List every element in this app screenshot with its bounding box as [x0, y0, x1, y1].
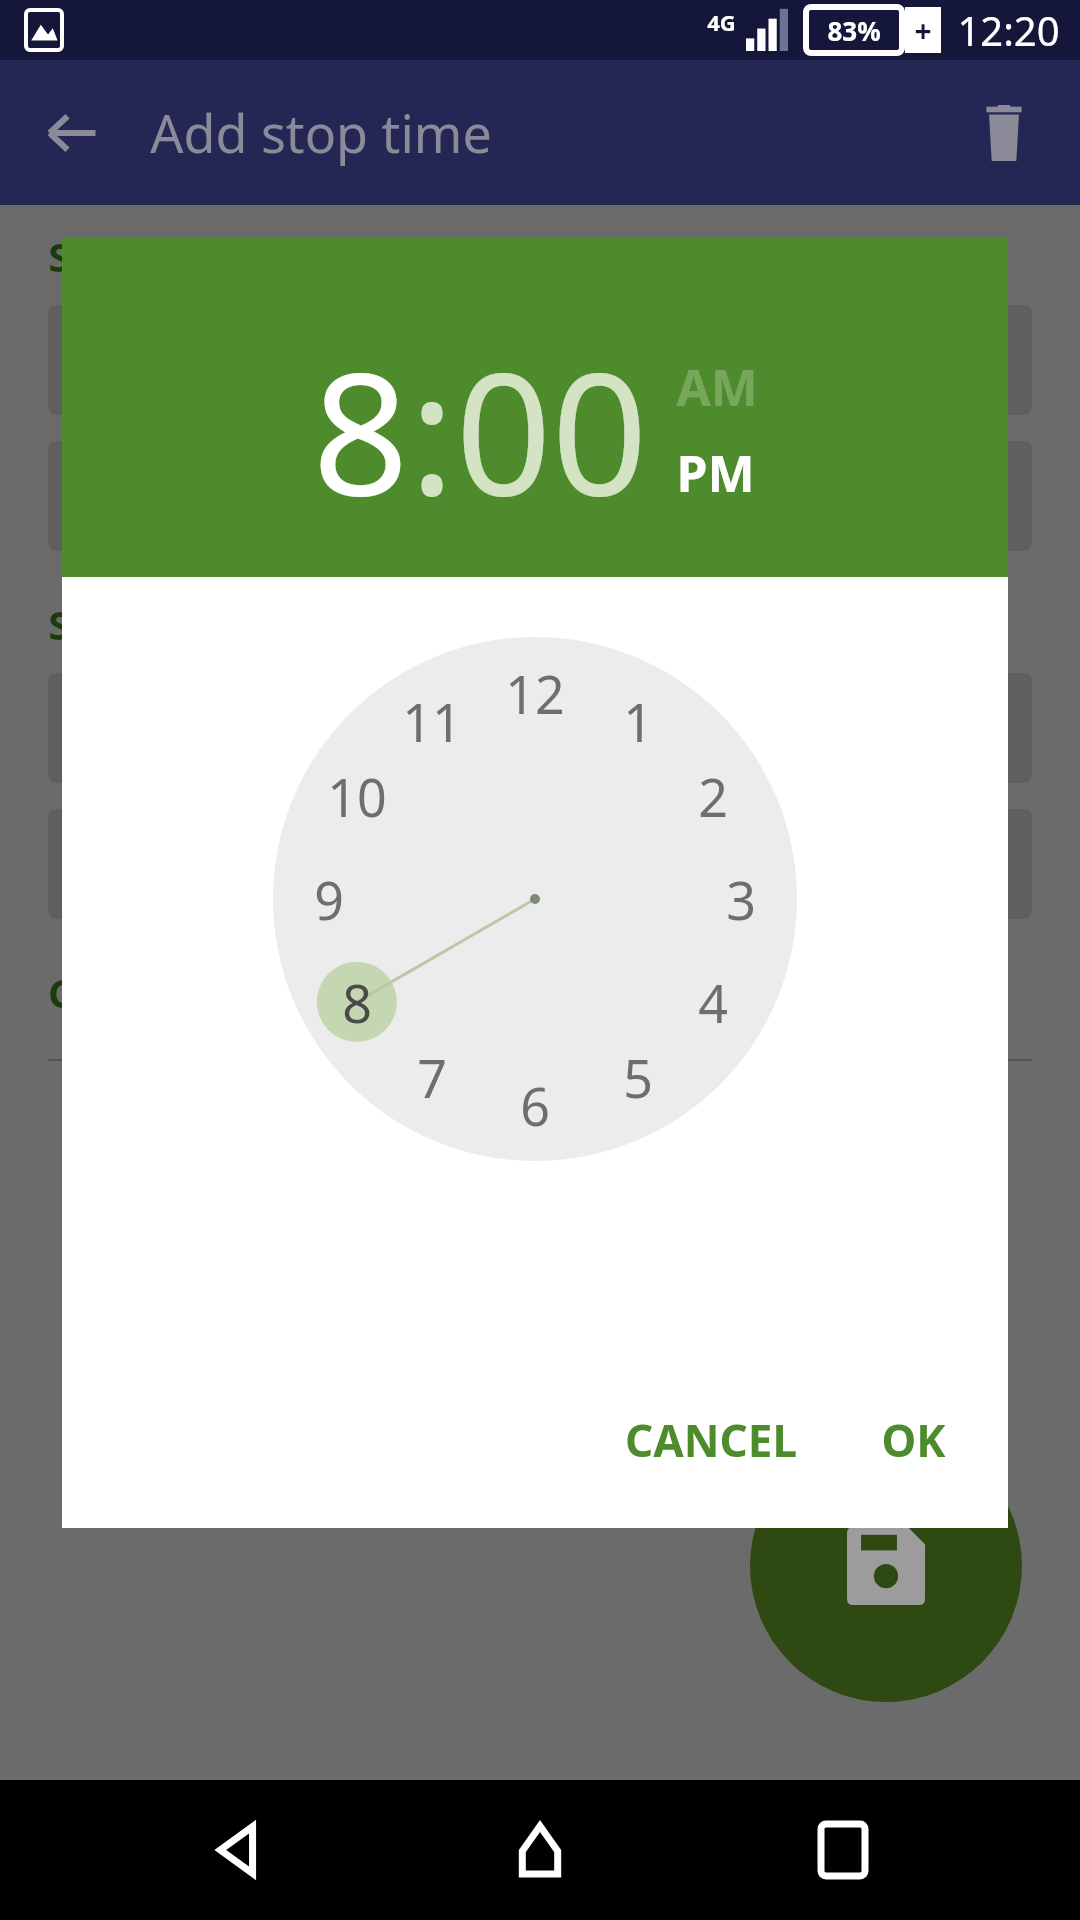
staticText: CANCEL — [625, 1410, 797, 1470]
button[interactable]: Save — [750, 1430, 1022, 1702]
staticText: Comment — [48, 965, 244, 1019]
staticText: 5 — [623, 1042, 653, 1113]
button[interactable]: OK — [849, 1392, 978, 1488]
staticText: + — [914, 10, 932, 51]
button[interactable]: 8 — [317, 962, 397, 1042]
staticText: OK — [881, 1410, 946, 1470]
staticText: PM — [676, 439, 755, 507]
staticText: Start — [48, 229, 147, 283]
staticText: 4G — [707, 7, 736, 37]
button[interactable]: Back — [24, 85, 120, 181]
staticText: Stop — [48, 597, 138, 651]
button[interactable]: Recents — [778, 1785, 908, 1915]
staticText: 00 — [455, 315, 648, 544]
button[interactable]: 3 — [701, 859, 781, 939]
button[interactable]: Back — [173, 1785, 303, 1915]
staticText: : — [409, 315, 455, 544]
staticText: 12:20 — [957, 3, 1060, 57]
staticText: AM — [676, 353, 758, 421]
button[interactable]: PM — [676, 437, 755, 509]
staticText: 12 — [505, 658, 565, 729]
button[interactable]: CANCEL — [593, 1392, 829, 1488]
button[interactable]: Home — [475, 1785, 605, 1915]
staticText: 8 — [342, 967, 372, 1038]
button[interactable] — [48, 305, 1032, 415]
button[interactable]: 12 — [495, 653, 575, 733]
staticText: 8 — [312, 315, 409, 544]
button[interactable]: 00 — [455, 315, 648, 544]
button[interactable]: AM — [676, 351, 758, 423]
button[interactable]: 2 — [673, 756, 753, 836]
staticText: 10 — [327, 761, 387, 832]
staticText: 6 — [520, 1070, 550, 1141]
staticText: 4 — [698, 967, 728, 1038]
staticText: 7 — [417, 1042, 447, 1113]
button[interactable]: 4 — [673, 962, 753, 1042]
button[interactable] — [48, 809, 1032, 919]
button[interactable] — [48, 673, 1032, 783]
staticText: 11 — [402, 686, 462, 757]
staticText: Add stop time — [150, 97, 492, 168]
button[interactable]: 9 — [289, 859, 369, 939]
button[interactable]: 6 — [495, 1065, 575, 1145]
button[interactable]: Delete — [956, 85, 1052, 181]
button[interactable]: 11 — [392, 681, 472, 761]
button[interactable]: 7 — [392, 1037, 472, 1117]
staticText: 3 — [726, 864, 756, 935]
staticText: 83% — [827, 13, 881, 48]
staticText: 1 — [623, 686, 653, 757]
staticText: 9 — [314, 864, 344, 935]
button[interactable]: 5 — [598, 1037, 678, 1117]
button[interactable] — [48, 441, 1032, 551]
staticText: 2 — [698, 761, 728, 832]
button[interactable]: 8 — [312, 315, 409, 544]
button[interactable]: 1 — [598, 681, 678, 761]
button[interactable]: 10 — [317, 756, 397, 836]
